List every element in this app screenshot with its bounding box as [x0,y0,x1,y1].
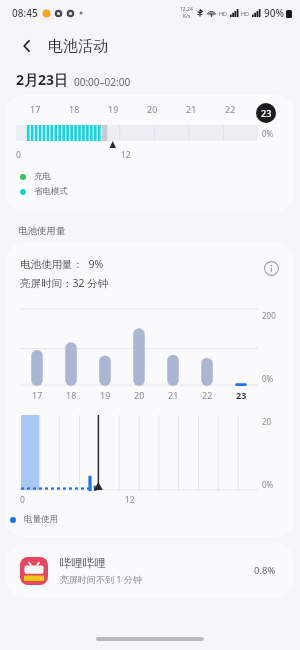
staticText: 90% [264,6,284,20]
staticText: 00:00–02:00 [74,75,131,89]
staticText: K/s [183,13,191,20]
staticText: 19 [100,389,111,401]
staticText: 0% [262,128,284,139]
staticText: 电池使用量 [18,225,66,237]
staticText: 20 [134,389,145,401]
staticText: 17 [30,103,41,115]
button[interactable]: 17 [6,95,294,211]
staticText: 22 [225,103,236,115]
staticText: 21 [186,103,197,115]
staticText: 17 [32,389,43,401]
button[interactable]: 哔哩哔哩 [6,544,294,597]
staticText: 电池使用量： 9% [20,257,104,271]
staticText: 0.8% [254,564,276,577]
staticText: 08:45 [12,6,38,20]
staticText: 亮屏时间：32 分钟 [20,276,109,290]
button[interactable]: 23 [256,103,276,123]
staticText: 20 [262,416,272,427]
staticText: 21 [168,389,179,401]
staticText: 23 [261,107,272,119]
staticText: 省电模式 [34,186,68,197]
staticText: 20 [147,103,158,115]
staticText: 2月23日 [16,70,69,89]
button[interactable]: Info [260,257,282,279]
staticText: 22 [202,389,213,401]
staticText: HD [241,10,250,17]
staticText: 0% [262,479,274,490]
staticText: 哔哩哔哩 [60,556,106,570]
staticText: 电池活动 [48,37,108,56]
staticText: 23 [236,389,247,401]
staticText: 12 [125,494,135,506]
staticText: 0 [20,494,25,506]
staticText: 0% [262,373,274,384]
staticText: HD [219,10,228,17]
staticText: 19 [108,103,119,115]
staticText: 18 [69,103,80,115]
staticText: 0 [16,149,21,161]
button[interactable]: Back [12,31,42,61]
staticText: 12 [121,149,131,161]
staticText: 亮屏时间不到 1 分钟 [60,573,142,585]
staticText: 18 [66,389,77,401]
staticText: 电量使用 [24,514,58,525]
staticText: 200 [262,310,276,321]
staticText: 12.24 [180,6,193,13]
staticText: 充电 [34,171,51,182]
